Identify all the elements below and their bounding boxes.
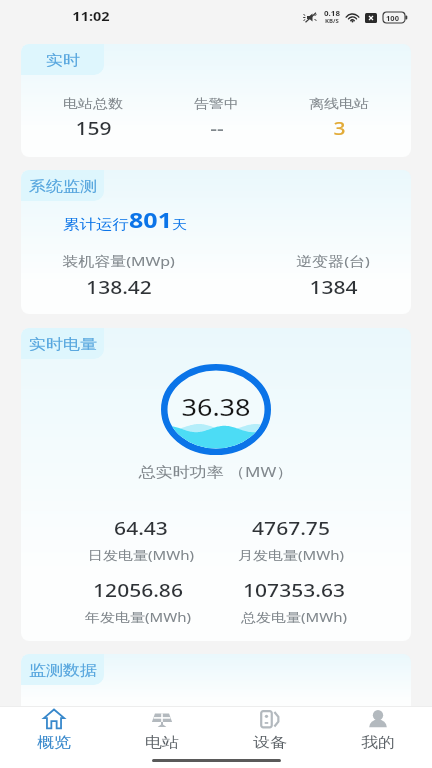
button[interactable]: 实时电量	[21, 328, 411, 641]
staticText: 离线电站	[309, 96, 369, 112]
button[interactable]: 离线电站	[309, 95, 369, 143]
staticText: 概览	[37, 734, 71, 751]
staticText: 3	[333, 116, 346, 141]
staticText: 逆变器(台)	[296, 252, 370, 270]
staticText: 月发电量(MWh)	[238, 547, 344, 563]
staticText: 12056.86	[93, 578, 183, 603]
button[interactable]: Devices	[216, 707, 324, 753]
staticText: 天	[172, 217, 187, 233]
staticText: 总实时功率 （MW）	[21, 462, 411, 481]
button[interactable]: 107353.63	[241, 576, 347, 627]
staticText: 0.18	[324, 9, 340, 18]
button[interactable]: 系统监测	[21, 170, 411, 314]
staticText: 138.42	[86, 275, 152, 300]
staticText: 监测数据	[29, 662, 97, 679]
staticText: 100	[386, 14, 399, 22]
staticText: 电站	[145, 734, 179, 751]
staticText: 日发电量(MWh)	[88, 547, 194, 563]
button[interactable]: 逆变器(台)	[296, 250, 370, 302]
staticText: 实时	[46, 52, 80, 69]
staticText: 电站总数	[63, 96, 123, 112]
staticText: 64.43	[114, 516, 168, 541]
staticText: 总发电量(MWh)	[241, 609, 347, 625]
button[interactable]: 装机容量(MWp)	[62, 250, 175, 302]
button[interactable]: 12056.86	[85, 576, 191, 627]
staticText: --	[210, 116, 224, 141]
staticText: 1384	[309, 275, 358, 300]
staticText: 36.38	[181, 392, 251, 423]
staticText: 4767.75	[252, 516, 330, 541]
button[interactable]: Power stations	[108, 707, 216, 753]
button[interactable]: 监测数据	[21, 654, 411, 714]
button[interactable]: Profile	[324, 707, 432, 753]
staticText: 159	[75, 116, 112, 141]
staticText: 系统监测	[29, 178, 97, 195]
staticText: 801	[129, 206, 172, 234]
staticText: KB/S	[325, 18, 339, 24]
staticText: 实时电量	[29, 336, 97, 353]
button[interactable]: 告警中	[194, 95, 239, 143]
button[interactable]: 电站总数	[63, 95, 123, 143]
button[interactable]: 实时	[21, 44, 411, 157]
button[interactable]: Overview	[0, 707, 108, 753]
staticText: 累计运行	[63, 216, 129, 233]
staticText: 年发电量(MWh)	[85, 609, 191, 625]
staticText: 设备	[253, 734, 287, 751]
staticText: 11:02	[72, 8, 110, 24]
staticText: 107353.63	[243, 578, 345, 603]
staticText: 我的	[361, 734, 395, 751]
button[interactable]: 4767.75	[238, 514, 344, 565]
button[interactable]: 64.43	[88, 514, 194, 565]
staticText: 告警中	[194, 96, 239, 112]
staticText: 装机容量(MWp)	[62, 252, 175, 270]
